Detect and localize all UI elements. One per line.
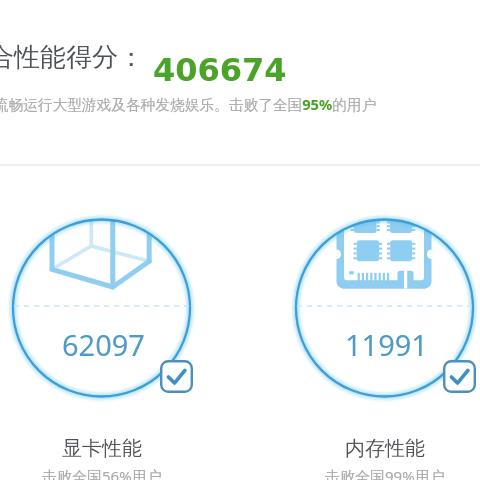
staticText: 406674 (153, 51, 287, 88)
staticText: 击败全国99%用户 (325, 466, 445, 480)
staticText: 内存性能 (345, 436, 425, 461)
button[interactable]: 内存性能 (295, 436, 475, 480)
staticText: 显卡性能 (62, 436, 142, 461)
staticText: 可流畅运行大型游戏及各种发烧娱乐。击败了全国95%的用户 (0, 94, 377, 114)
button[interactable]: 测试已完成 (160, 360, 193, 393)
button[interactable]: 测试已完成 (443, 360, 476, 393)
staticText: 62097 (62, 325, 145, 364)
staticText: 击败全国56%用户 (42, 466, 162, 480)
staticText: 11991 (345, 325, 428, 364)
staticText: 综合性能得分： (0, 41, 144, 74)
button[interactable]: 显卡性能 (12, 436, 192, 480)
